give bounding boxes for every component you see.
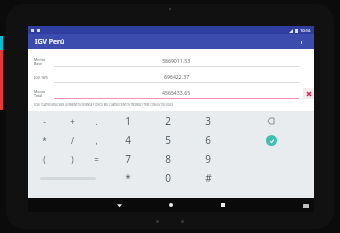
staticText: 1 xyxy=(125,114,131,128)
button[interactable]: + xyxy=(60,112,84,130)
staticText: 4565433.65 xyxy=(162,89,191,96)
button[interactable]: Home xyxy=(145,198,197,212)
staticText: . xyxy=(95,116,98,127)
staticText: SON: CUATRO MILLONES QUINIENTOS SESENTA … xyxy=(34,103,174,107)
staticText: ) xyxy=(71,154,74,165)
button[interactable]: 3869011.53 xyxy=(54,56,299,67)
staticText: 5 xyxy=(165,133,171,147)
button[interactable]: 6 xyxy=(188,131,228,149)
staticText: , xyxy=(95,135,98,146)
staticText: 8 xyxy=(165,152,171,166)
button[interactable]: Clear xyxy=(303,88,314,99)
staticText: Monto Base xyxy=(34,57,52,66)
button[interactable]: * xyxy=(108,169,148,187)
staticText: 7 xyxy=(125,152,131,166)
button[interactable]: 1 xyxy=(108,112,148,130)
button[interactable]: , xyxy=(84,131,108,149)
staticText: 2 xyxy=(165,114,171,128)
staticText: * xyxy=(42,135,47,146)
button[interactable]: Confirm xyxy=(266,135,277,146)
button[interactable]: 3 xyxy=(188,112,228,130)
button[interactable]: = xyxy=(84,150,108,168)
staticText: 10:14 xyxy=(300,28,311,33)
staticText: 4 xyxy=(125,133,131,147)
staticText: 696422.37 xyxy=(164,73,190,80)
staticText: IGV 18% xyxy=(34,75,52,80)
button[interactable]: Switch keyboard xyxy=(301,201,310,210)
button[interactable]: 4565433.65 xyxy=(54,88,299,99)
staticText: / xyxy=(71,135,74,146)
staticText: 9 xyxy=(205,152,211,166)
button[interactable]: 0 xyxy=(148,169,188,187)
staticText: 3 xyxy=(205,114,211,128)
staticText: - xyxy=(43,116,46,127)
button[interactable]: / xyxy=(60,131,84,149)
button[interactable]: . xyxy=(84,112,108,130)
staticText: 3869011.53 xyxy=(162,57,191,64)
button[interactable] xyxy=(28,169,108,187)
staticText: * xyxy=(125,171,131,185)
staticText: IGV Perú xyxy=(35,37,65,47)
button[interactable]: 5 xyxy=(148,131,188,149)
button[interactable]: 9 xyxy=(188,150,228,168)
staticText: 0 xyxy=(165,171,171,185)
staticText: ( xyxy=(43,154,46,165)
button[interactable]: More options xyxy=(294,35,308,49)
button[interactable]: 696422.37 xyxy=(54,72,299,83)
button[interactable]: Backspace xyxy=(265,115,277,127)
button[interactable]: * xyxy=(28,131,60,149)
button[interactable]: 8 xyxy=(148,150,188,168)
button[interactable]: - xyxy=(28,112,60,130)
button[interactable]: Recents xyxy=(197,198,249,212)
staticText: 6 xyxy=(205,133,211,147)
staticText: Monto Total xyxy=(34,89,52,98)
button[interactable]: Back xyxy=(93,198,145,212)
staticText: = xyxy=(94,154,99,165)
staticText: + xyxy=(70,116,75,127)
button[interactable]: 2 xyxy=(148,112,188,130)
button[interactable]: ) xyxy=(60,150,84,168)
button[interactable]: 4 xyxy=(108,131,148,149)
staticText: # xyxy=(205,171,212,185)
button[interactable]: # xyxy=(188,169,228,187)
button[interactable]: 7 xyxy=(108,150,148,168)
button[interactable]: ( xyxy=(28,150,60,168)
